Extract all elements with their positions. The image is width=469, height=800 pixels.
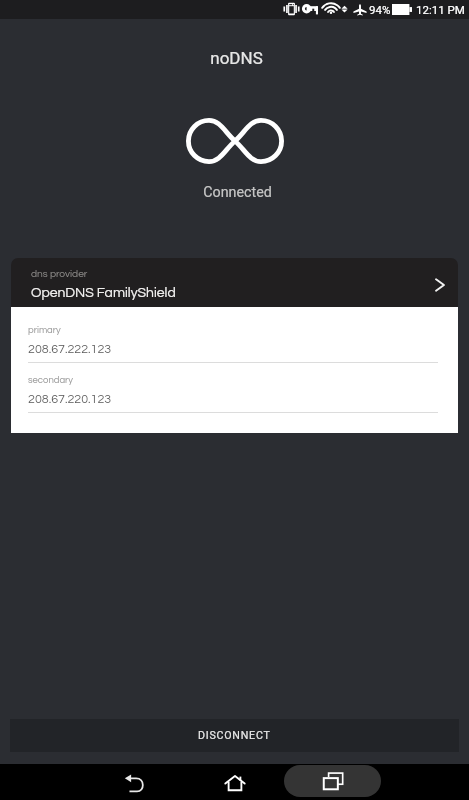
button[interactable]: dns provider <box>11 258 458 307</box>
staticText: 12:11 PM <box>416 3 465 16</box>
staticText: DISCONNECT <box>198 729 271 742</box>
button[interactable]: Home <box>203 766 267 800</box>
staticText: noDNS <box>210 48 263 68</box>
staticText: secondary <box>28 375 74 385</box>
staticText: Connected <box>203 184 272 200</box>
button[interactable]: Recent apps <box>284 765 381 797</box>
staticText: 208.67.220.123 <box>28 393 112 406</box>
staticText: 94% <box>369 3 391 16</box>
staticText: 208.67.222.123 <box>28 343 112 356</box>
button[interactable]: DISCONNECT <box>10 719 459 752</box>
staticText: primary <box>28 325 61 335</box>
staticText: OpenDNS FamilyShield <box>31 286 176 300</box>
staticText: dns provider <box>31 269 88 280</box>
button[interactable]: Back <box>102 766 166 800</box>
